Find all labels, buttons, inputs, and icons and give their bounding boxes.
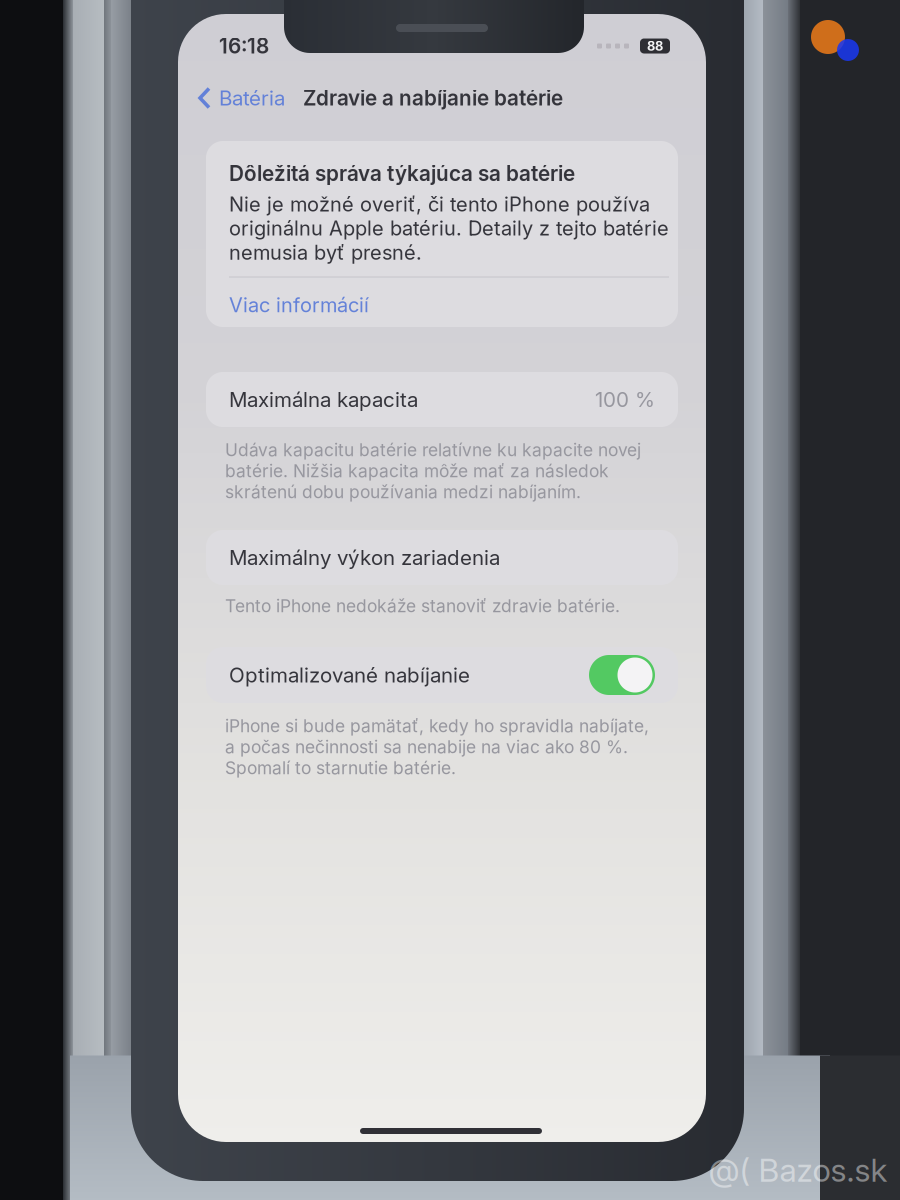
button[interactable]: Maximálny výkon zariadenia: [206, 530, 678, 585]
staticText: @( Bazos.sk: [708, 1151, 887, 1189]
staticText: iPhone si bude pamätať, kedy ho spravidl…: [225, 715, 649, 778]
staticText: Maximálna kapacita: [229, 387, 418, 412]
staticText: Batéria: [219, 86, 285, 110]
staticText: Dôležitá správa týkajúca sa batérie: [229, 161, 575, 186]
staticText: 16:18: [219, 33, 269, 59]
staticText: Nie je možné overiť, či tento iPhone pou…: [229, 192, 669, 265]
staticText: 100 %: [595, 387, 655, 412]
staticText: Maximálny výkon zariadenia: [229, 545, 500, 570]
staticText: Zdravie a nabíjanie batérie: [303, 85, 563, 110]
staticText: Udáva kapacitu batérie relatívne ku kapa…: [225, 439, 641, 502]
staticText: 88: [647, 38, 663, 54]
button[interactable]: Optimalizované nabíjanie: [589, 655, 655, 695]
staticText: Viac informácií: [229, 293, 369, 317]
button[interactable]: Viac informácií: [229, 280, 655, 329]
staticText: Optimalizované nabíjanie: [229, 663, 470, 687]
button[interactable]: Batéria: [197, 79, 285, 117]
button[interactable]: Maximálna kapacita: [206, 372, 678, 427]
staticText: Tento iPhone nedokáže stanoviť zdravie b…: [225, 595, 620, 616]
